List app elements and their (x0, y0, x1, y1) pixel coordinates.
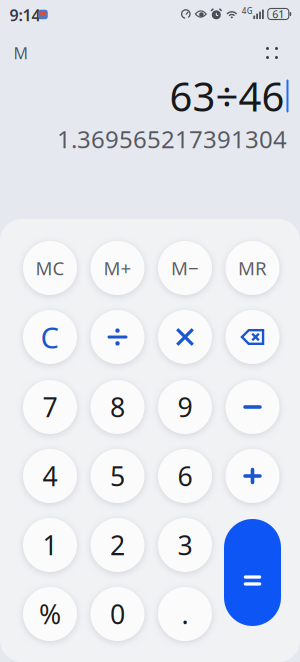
staticText: 4 (42, 458, 57, 494)
staticText: 9:14 (9, 4, 40, 26)
staticText: 63÷46 (169, 69, 284, 122)
staticText: M (13, 42, 28, 64)
button[interactable]: 5 (90, 449, 144, 503)
button[interactable]: Multiply (158, 310, 212, 364)
staticText: 7 (42, 389, 57, 425)
button[interactable]: M− (158, 241, 212, 295)
button[interactable]: MC (23, 241, 77, 295)
staticText: . (181, 596, 188, 632)
staticText: 61 (272, 7, 284, 21)
button[interactable]: . (158, 587, 212, 641)
button[interactable]: 8 (90, 380, 144, 434)
staticText: 9 (177, 389, 192, 425)
staticText: % (39, 596, 61, 632)
button[interactable]: 1 (23, 518, 77, 572)
button[interactable]: Plus (225, 449, 279, 503)
staticText: 5 (110, 458, 125, 494)
staticText: 1 (42, 527, 57, 563)
button[interactable]: M+ (90, 241, 144, 295)
staticText: 1.369565217391304 (57, 123, 287, 155)
button[interactable]: C (23, 310, 77, 364)
button[interactable]: 6 (158, 449, 212, 503)
button[interactable]: 4 (23, 449, 77, 503)
button[interactable]: 2 (90, 518, 144, 572)
button[interactable]: % (23, 587, 77, 641)
button[interactable]: Divide (90, 310, 144, 364)
staticText: MR (238, 256, 267, 280)
staticText: M− (171, 256, 199, 280)
button[interactable]: Minus (225, 380, 279, 434)
button[interactable]: M (4, 37, 38, 69)
staticText: 2 (110, 527, 125, 563)
button[interactable]: 7 (23, 380, 77, 434)
staticText: 4G (242, 6, 253, 16)
button[interactable]: MR (225, 241, 279, 295)
button[interactable]: 3 (158, 518, 212, 572)
staticText: 8 (110, 389, 125, 425)
button[interactable]: More options (255, 37, 289, 69)
staticText: M+ (103, 256, 131, 280)
staticText: 3 (177, 527, 192, 563)
staticText: 0 (110, 596, 125, 632)
button[interactable]: Backspace (225, 310, 279, 364)
staticText: 6 (177, 458, 192, 494)
button[interactable]: 9 (158, 380, 212, 434)
staticText: C (40, 317, 59, 356)
staticText: MC (35, 256, 64, 280)
button[interactable]: Equals (224, 519, 281, 626)
button[interactable]: 0 (90, 587, 144, 641)
